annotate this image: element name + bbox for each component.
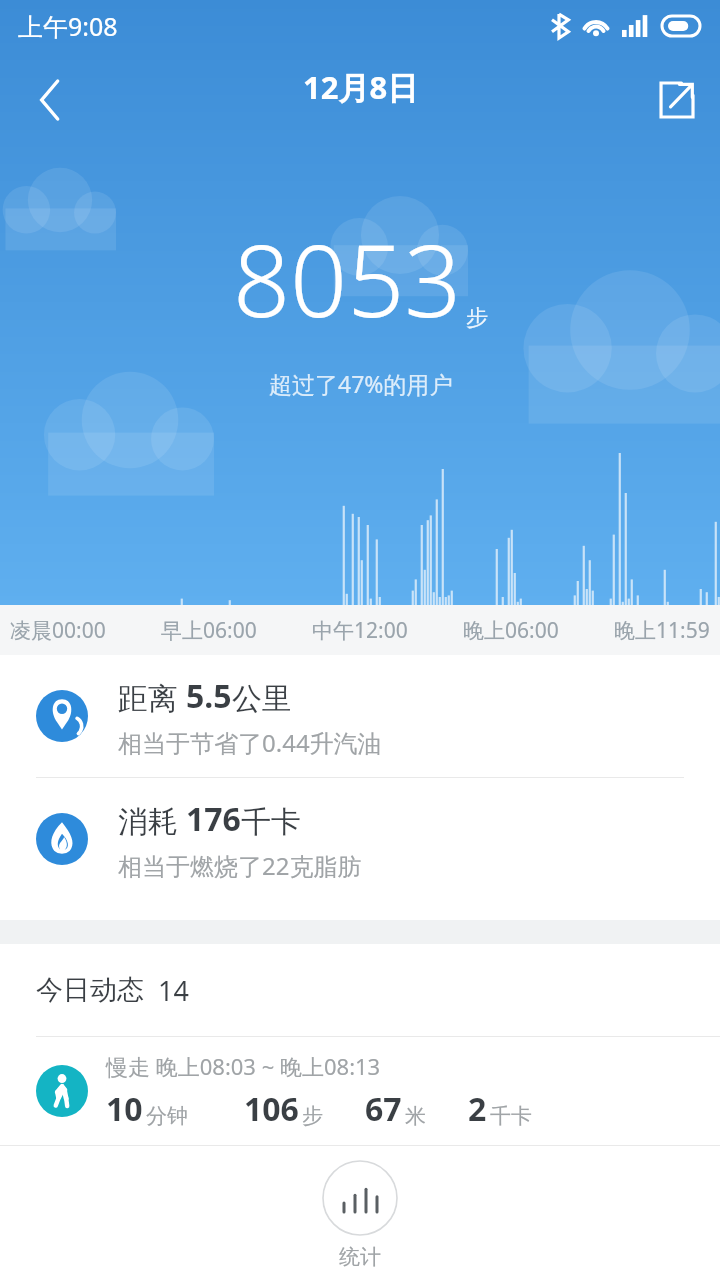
staticText: 距离 [118, 677, 186, 718]
button[interactable]: 距离 [0, 655, 720, 777]
staticText: 今日动态 [36, 973, 144, 1007]
button[interactable]: 统计 [0, 1150, 720, 1280]
staticText: 晚上11:59 [614, 616, 710, 645]
button[interactable]: Share [640, 74, 712, 126]
staticText: 176 [186, 797, 241, 841]
staticText: 千卡 [241, 803, 301, 841]
staticText: 上午9:08 [18, 9, 118, 43]
staticText: 米 [405, 1103, 426, 1129]
staticText: 分钟 [146, 1103, 188, 1129]
button[interactable]: 消耗 [0, 778, 720, 900]
staticText: 慢走 晚上08:03 ~ 晚上08:13 [106, 1051, 381, 1081]
staticText: 5.5 [186, 674, 232, 718]
staticText: 步 [302, 1103, 323, 1129]
staticText: 106 [244, 1087, 299, 1131]
staticText: 消耗 [118, 800, 186, 841]
staticText: 10 [106, 1087, 143, 1131]
staticText: 8053 [233, 210, 462, 346]
staticText: 超过了47%的用户 [269, 368, 453, 399]
staticText: 晚上06:00 [463, 616, 559, 645]
staticText: 公里 [232, 680, 292, 718]
staticText: 相当于燃烧了22克脂肪 [118, 849, 362, 882]
staticText: 凌晨00:00 [10, 616, 106, 645]
staticText: 统计 [339, 1244, 381, 1270]
staticText: 千卡 [490, 1103, 532, 1129]
staticText: 12月8日 [303, 66, 419, 108]
button[interactable]: 慢走 晚上08:03 ~ 晚上08:13 [0, 1037, 720, 1145]
staticText: 14 [158, 972, 189, 1009]
staticText: 早上06:00 [161, 616, 257, 645]
staticText: 67 [365, 1087, 402, 1131]
button[interactable]: Back [14, 74, 86, 126]
staticText: 相当于节省了0.44升汽油 [118, 726, 382, 759]
staticText: 2 [468, 1087, 487, 1131]
staticText: 中午12:00 [312, 616, 408, 645]
staticText: 步 [466, 304, 488, 332]
